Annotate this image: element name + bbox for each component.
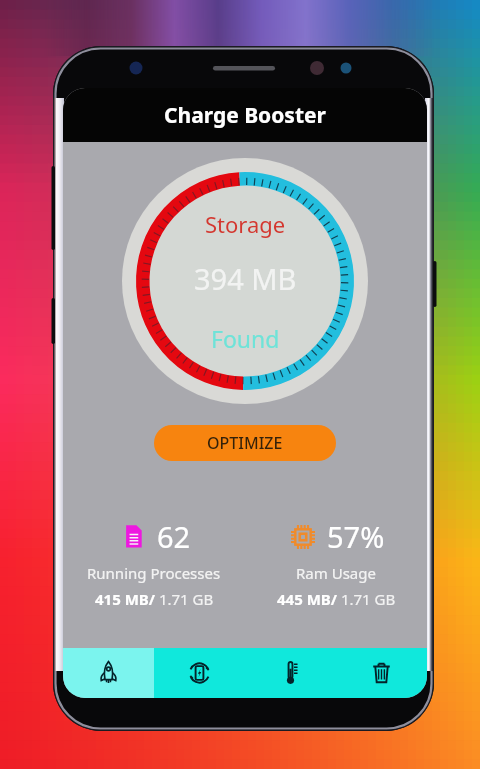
staticText: 57% <box>327 517 385 556</box>
staticText: Found <box>211 323 280 354</box>
staticText: 62 <box>157 517 191 556</box>
staticText: Running Processes <box>87 563 221 583</box>
staticText: Ram Usage <box>296 563 376 583</box>
button[interactable]: Battery saver <box>154 648 245 698</box>
staticText: 1.71 GB <box>155 589 214 609</box>
staticText: 415 MB/ <box>95 589 155 609</box>
staticText: Charge Booster <box>164 101 326 130</box>
button[interactable]: OPTIMIZE <box>154 425 336 461</box>
staticText: Storage <box>205 209 286 239</box>
staticText: 394 MB <box>194 259 297 298</box>
staticText: 445 MB/ <box>277 589 337 609</box>
button[interactable]: Junk cleaner <box>336 648 427 698</box>
button[interactable]: Temperature <box>245 648 336 698</box>
button[interactable]: Boost <box>63 648 154 698</box>
staticText: OPTIMIZE <box>207 432 283 454</box>
staticText: 1.71 GB <box>337 589 396 609</box>
